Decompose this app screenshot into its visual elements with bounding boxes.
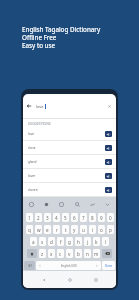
staticText: 8	[91, 215, 94, 221]
button[interactable]: Play pronunciation of gland	[105, 159, 112, 165]
staticText: lover	[28, 174, 36, 178]
staticText: 6	[73, 215, 76, 221]
staticText: >	[96, 264, 98, 268]
button[interactable]: h	[74, 236, 83, 247]
button[interactable]: 8	[88, 212, 97, 223]
button[interactable]: <	[36, 261, 101, 270]
staticText: <	[39, 264, 41, 268]
button[interactable]: g	[65, 236, 74, 247]
staticText: u	[82, 227, 85, 233]
staticText: love	[28, 132, 35, 136]
button[interactable]: d	[47, 236, 56, 247]
staticText: m	[94, 251, 99, 257]
button[interactable]: Recent apps	[90, 274, 101, 285]
staticText: 7	[82, 215, 85, 221]
other: Back	[27, 104, 31, 108]
button[interactable]: gland	[23, 155, 116, 169]
staticText: d	[50, 239, 53, 245]
button[interactable]: Hide keyboard	[103, 200, 112, 209]
button[interactable]: Back	[38, 274, 49, 285]
staticText: g	[68, 239, 71, 245]
button[interactable]: 3	[43, 212, 52, 223]
button[interactable]: Home	[64, 274, 75, 285]
button[interactable]: r	[52, 224, 61, 235]
button[interactable]: 4	[52, 212, 61, 223]
button[interactable]: f	[56, 236, 65, 247]
button[interactable]: x	[47, 248, 56, 259]
staticText: p	[109, 227, 112, 233]
button[interactable]: love	[23, 127, 116, 141]
button[interactable]: n	[83, 248, 92, 259]
button[interactable]: w	[34, 224, 43, 235]
button[interactable]: y	[70, 224, 79, 235]
button[interactable]: i	[88, 224, 97, 235]
button[interactable]: Backspace	[101, 248, 113, 259]
button[interactable]: Stickers	[57, 200, 66, 209]
button[interactable]: t	[61, 224, 70, 235]
staticText: q	[28, 227, 31, 233]
button[interactable]: s	[38, 236, 47, 247]
staticText: l	[105, 239, 107, 245]
button[interactable]: c	[56, 248, 65, 259]
staticText: c	[59, 251, 62, 257]
staticText: SUGGESTIONS	[28, 121, 51, 125]
staticText: 1	[28, 215, 31, 221]
button[interactable]: !#1	[24, 261, 35, 270]
staticText: gland	[28, 160, 37, 164]
staticText: t	[65, 227, 67, 233]
staticText: f	[60, 239, 62, 245]
button[interactable]: j	[83, 236, 92, 247]
staticText: 2	[37, 215, 40, 221]
button[interactable]: 2	[34, 212, 43, 223]
staticText: s	[41, 239, 44, 245]
button[interactable]: 9	[97, 212, 106, 223]
button[interactable]: Play pronunciation of clove	[105, 145, 112, 151]
button[interactable]: o	[97, 224, 106, 235]
button[interactable]: Emoji	[27, 200, 36, 209]
staticText: love	[36, 104, 44, 109]
button[interactable]: z	[38, 248, 47, 259]
button[interactable]: 5	[61, 212, 70, 223]
staticText: Done	[105, 264, 113, 268]
button[interactable]: Settings	[42, 200, 51, 209]
staticText: v	[68, 251, 71, 257]
button[interactable]: 6	[70, 212, 79, 223]
staticText: 4	[55, 215, 58, 221]
button[interactable]: Play pronunciation of cloven	[105, 187, 112, 193]
button[interactable]: 1	[25, 212, 34, 223]
staticText: k	[95, 239, 98, 245]
staticText: cloven	[28, 188, 38, 192]
button[interactable]: k	[92, 236, 101, 247]
button[interactable]: 0	[106, 212, 115, 223]
button[interactable]: Search	[73, 200, 82, 209]
staticText: English Tagalog Dictionary Offline Free …	[22, 26, 101, 50]
button[interactable]: Handwriting	[88, 200, 97, 209]
button[interactable]: clove	[23, 141, 116, 155]
button[interactable]: e	[43, 224, 52, 235]
button[interactable]: Shift	[26, 248, 38, 259]
button[interactable]: Play pronunciation of love	[105, 131, 112, 137]
button[interactable]: l	[101, 236, 110, 247]
button[interactable]: b	[74, 248, 83, 259]
button[interactable]: lover	[23, 169, 116, 183]
staticText: n	[86, 251, 89, 257]
button[interactable]: Done	[102, 261, 115, 270]
staticText: 3	[46, 215, 49, 221]
button[interactable]: 7	[79, 212, 88, 223]
staticText: b	[77, 251, 80, 257]
staticText: h	[77, 239, 80, 245]
button[interactable]: p	[106, 224, 115, 235]
button[interactable]: m	[92, 248, 101, 259]
staticText: r	[56, 227, 58, 233]
staticText: e	[46, 227, 49, 233]
staticText: x	[50, 251, 53, 257]
staticText: 5	[64, 215, 67, 221]
button[interactable]: u	[79, 224, 88, 235]
button[interactable]: q	[25, 224, 34, 235]
button[interactable]: v	[65, 248, 74, 259]
button[interactable]: Back	[23, 94, 116, 118]
button[interactable]: a	[29, 236, 38, 247]
staticText: z	[41, 251, 44, 257]
button[interactable]: cloven	[23, 183, 116, 197]
button[interactable]: Play pronunciation of lover	[105, 173, 112, 179]
